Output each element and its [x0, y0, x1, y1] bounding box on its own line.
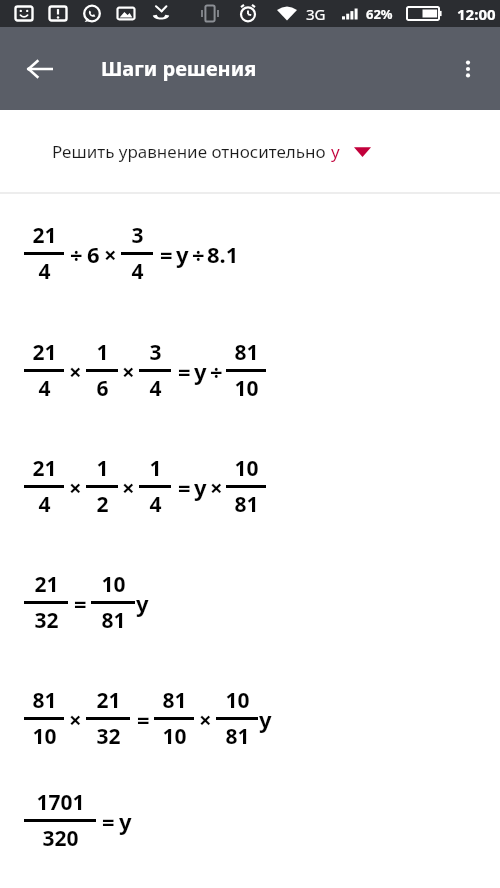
staticText: 81 [101, 606, 126, 635]
staticText: 4 [38, 374, 51, 403]
staticText: 3 [131, 221, 144, 250]
staticText: y [194, 472, 207, 502]
staticText: y [194, 356, 207, 386]
staticText: y [119, 806, 132, 836]
staticText: 62% [366, 5, 393, 23]
staticText: × [69, 356, 82, 386]
staticText: × [69, 704, 82, 734]
staticText: 10 [225, 686, 250, 715]
staticText: × [122, 356, 135, 386]
staticText: ÷ [70, 239, 83, 269]
staticText: = [160, 239, 173, 269]
staticText: × [69, 472, 82, 502]
staticText: = [137, 704, 150, 734]
staticText: 10 [234, 454, 259, 483]
staticText: 21 [32, 338, 57, 367]
staticText: 1701 [36, 788, 85, 817]
button[interactable]: More options [444, 45, 492, 93]
staticText: 21 [32, 454, 57, 483]
staticText: = [74, 588, 87, 618]
staticText: 81 [225, 722, 250, 751]
staticText: × [210, 472, 223, 502]
staticText: 2 [96, 490, 109, 519]
staticText: 32 [34, 606, 59, 635]
staticText: y [331, 140, 340, 163]
staticText: = [178, 472, 191, 502]
staticText: y [259, 704, 272, 734]
staticText: 1 [96, 338, 109, 367]
staticText: 4 [149, 490, 162, 519]
staticText: 10 [162, 722, 187, 751]
staticText: Решить уравнение относительно [52, 140, 331, 163]
staticText: 1 [96, 454, 109, 483]
staticText: y [136, 588, 149, 618]
staticText: 3 [149, 338, 162, 367]
staticText: × [122, 472, 135, 502]
staticText: 4 [38, 257, 51, 286]
button[interactable]: Back [14, 43, 66, 95]
staticText: 4 [131, 257, 144, 286]
staticText: 10 [32, 722, 57, 751]
staticText: 4 [149, 374, 162, 403]
staticText: = [178, 356, 191, 386]
staticText: 81 [32, 686, 57, 715]
staticText: 10 [234, 374, 259, 403]
staticText: 10 [101, 570, 126, 599]
staticText: = [102, 806, 115, 836]
staticText: 81 [234, 338, 259, 367]
staticText: 6 [87, 239, 100, 269]
staticText: 3G [306, 4, 326, 24]
button[interactable]: Решить уравнение относительно [0, 110, 500, 192]
staticText: 21 [96, 686, 121, 715]
staticText: 6 [96, 374, 109, 403]
staticText: y [176, 239, 189, 269]
staticText: 8.1 [207, 239, 239, 269]
staticText: 320 [42, 824, 79, 853]
staticText: ÷ [192, 239, 205, 269]
staticText: 1 [149, 454, 162, 483]
staticText: 12:00 [457, 4, 496, 24]
staticText: Шаги решения [101, 55, 257, 82]
staticText: 81 [234, 490, 259, 519]
staticText: × [199, 704, 212, 734]
staticText: 21 [32, 221, 57, 250]
staticText: 81 [162, 686, 187, 715]
staticText: 21 [34, 570, 59, 599]
staticText: 4 [38, 490, 51, 519]
staticText: 32 [96, 722, 121, 751]
staticText: × [104, 239, 117, 269]
staticText: ÷ [210, 356, 223, 386]
